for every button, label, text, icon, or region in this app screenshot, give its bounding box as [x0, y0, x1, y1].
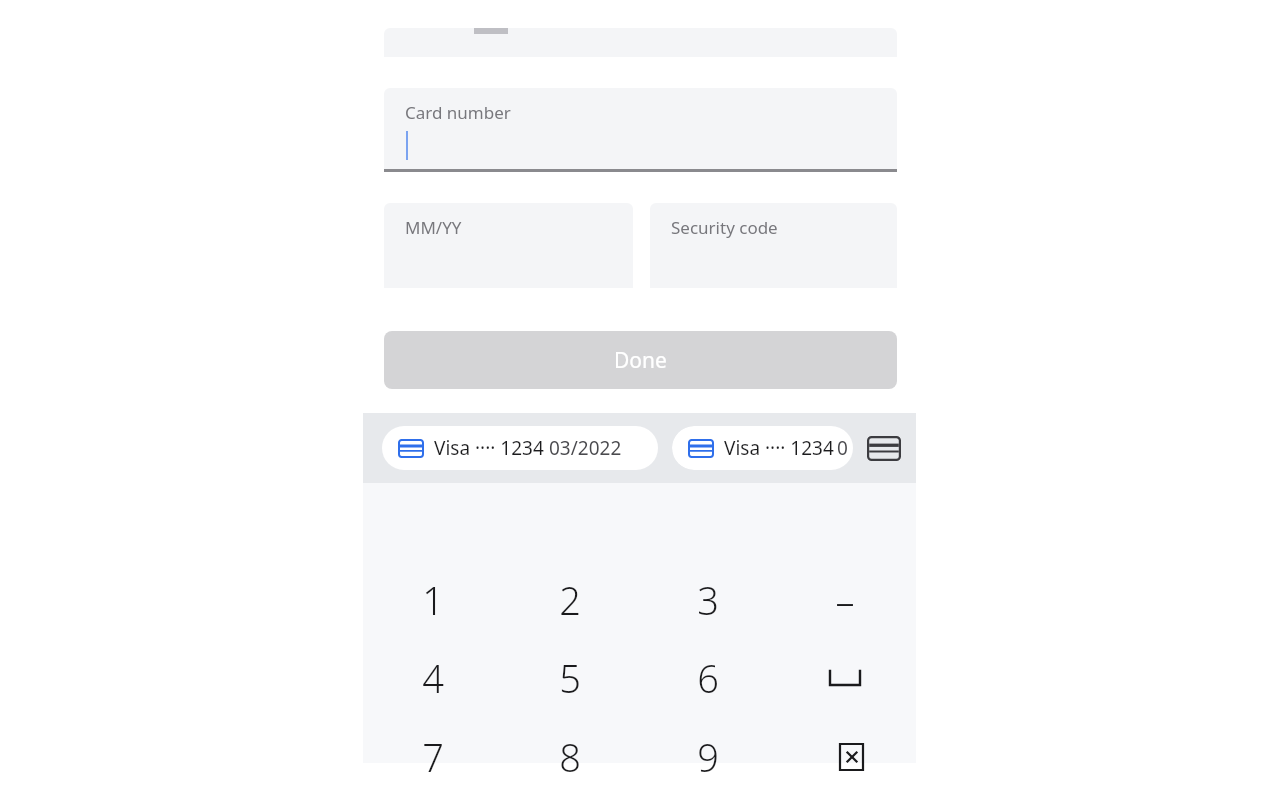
button[interactable]: Visa ···· 1234 [672, 426, 853, 470]
button[interactable]: – [801, 567, 889, 633]
staticText: Security code [671, 216, 778, 239]
button[interactable]: 6 [664, 645, 752, 711]
staticText: 5 [559, 652, 581, 704]
button[interactable]: Card number [384, 88, 897, 172]
staticText: 9 [697, 731, 719, 783]
button[interactable]: 2 [526, 567, 614, 633]
staticText: 2 [559, 574, 581, 626]
button[interactable]: 1 [389, 567, 477, 633]
staticText: Visa ···· 1234 [434, 435, 549, 461]
button[interactable]: Space [811, 650, 879, 706]
staticText: 1 [422, 574, 444, 626]
staticText: 8 [559, 731, 581, 783]
button[interactable]: 3 [664, 567, 752, 633]
button[interactable]: Done [384, 331, 897, 389]
staticText: 3 [697, 574, 719, 626]
button[interactable]: MM/YY [384, 203, 633, 288]
button[interactable] [384, 28, 897, 57]
button[interactable]: Payment methods [862, 426, 906, 470]
staticText: MM/YY [405, 216, 462, 239]
staticText: Card number [405, 101, 511, 124]
staticText: – [835, 574, 855, 626]
button[interactable]: 5 [526, 645, 614, 711]
button[interactable]: 7 [389, 724, 477, 790]
button[interactable]: Visa ···· 1234 [382, 426, 658, 470]
button[interactable]: 9 [664, 724, 752, 790]
button[interactable]: 4 [389, 645, 477, 711]
staticText: Visa ···· 1234 [724, 435, 837, 461]
staticText: 7 [422, 731, 444, 783]
staticText: 4 [422, 652, 444, 704]
staticText: 6 [697, 652, 719, 704]
button[interactable]: Backspace [811, 729, 879, 785]
button[interactable]: 8 [526, 724, 614, 790]
button[interactable]: Security code [650, 203, 897, 288]
staticText: 03/2022 [549, 435, 622, 461]
staticText: Done [614, 346, 667, 375]
